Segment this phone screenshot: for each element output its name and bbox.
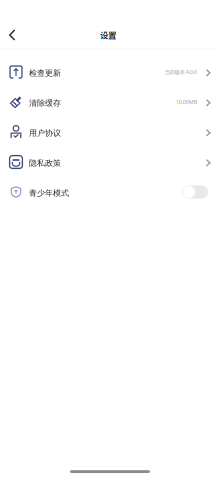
button[interactable]: Back [1, 23, 23, 47]
button[interactable]: 青少年模式 [0, 177, 216, 207]
button[interactable]: Teen mode [182, 185, 210, 199]
button[interactable]: 隐私政策 [0, 147, 216, 177]
button[interactable]: 用户协议 [0, 117, 216, 147]
staticText: 清除缓存 [29, 98, 61, 108]
button[interactable]: 清除缓存 [0, 87, 216, 117]
staticText: 10.00MB [176, 98, 197, 106]
staticText: 青少年模式 [29, 188, 69, 198]
button[interactable]: 检查更新 [0, 57, 216, 87]
staticText: 当前版本 4.0.0 [165, 68, 197, 76]
staticText: 检查更新 [29, 68, 61, 78]
staticText: 隐私政策 [29, 158, 61, 168]
staticText: 用户协议 [29, 128, 61, 138]
staticText: 设置 [100, 29, 116, 41]
